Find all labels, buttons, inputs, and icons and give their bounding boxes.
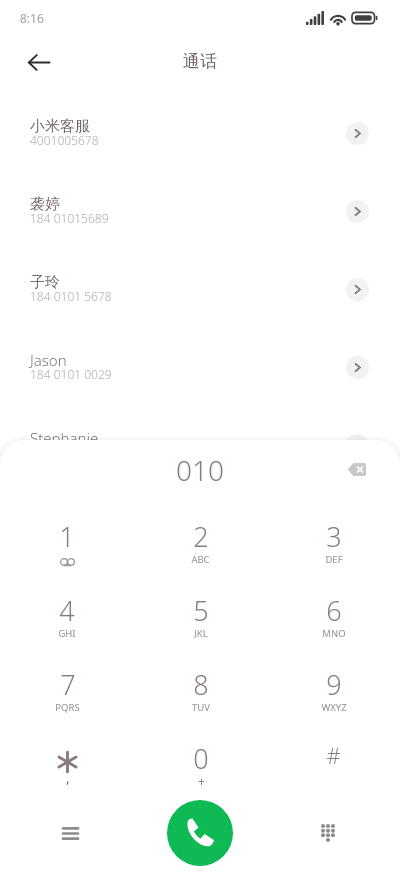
button[interactable]: 袭婷 [0, 175, 400, 253]
button[interactable]: # [267, 734, 400, 808]
button[interactable]: Jason [0, 331, 400, 409]
button[interactable]: 6 [267, 586, 400, 660]
button[interactable]: Dialpad [305, 810, 350, 855]
button[interactable]: 0 [134, 734, 267, 808]
staticText: 184 01015689 [30, 210, 109, 226]
staticText: 5 [193, 592, 209, 629]
staticText: 8:16 [20, 10, 44, 26]
staticText: 0 [193, 740, 209, 777]
staticText: Stephanie [30, 428, 99, 448]
staticText: 184 0101 5678 [30, 288, 112, 304]
staticText: MNO [322, 627, 346, 640]
staticText: + [198, 773, 205, 789]
staticText: 3 [326, 518, 342, 555]
staticText: 4001005678 [30, 132, 99, 148]
staticText: GHI [58, 627, 76, 640]
staticText: ABC [191, 553, 210, 566]
button[interactable]: Call [167, 800, 233, 866]
staticText: , [66, 768, 70, 787]
staticText: 子玲 [30, 273, 60, 292]
staticText: WXYZ [321, 701, 347, 714]
staticText: Jason [30, 350, 67, 370]
button[interactable]: Call log options [48, 811, 93, 856]
staticText: 6 [326, 592, 342, 629]
button[interactable]: 小米客服 [0, 97, 400, 175]
staticText: 小米客服 [30, 117, 90, 136]
staticText: 1 [59, 518, 75, 555]
staticText: PQRS [55, 701, 80, 714]
staticText: JKL [194, 627, 208, 640]
button[interactable]: , [0, 734, 134, 808]
button[interactable]: 3 [267, 512, 400, 586]
button[interactable]: Back [14, 38, 62, 86]
button[interactable]: 子玲 [0, 253, 400, 331]
staticText: # [326, 740, 341, 770]
button[interactable]: 9 [267, 660, 400, 734]
button[interactable]: 7 [0, 660, 134, 734]
staticText: DEF [325, 553, 343, 566]
staticText: 袭婷 [30, 195, 60, 214]
staticText: 010 [176, 451, 224, 489]
button[interactable]: 1 [0, 512, 134, 586]
button[interactable]: 2 [134, 512, 267, 586]
button[interactable]: 4 [0, 586, 134, 660]
button[interactable]: Backspace [335, 448, 378, 491]
button[interactable]: Stephanie [0, 409, 400, 487]
staticText: TUV [192, 701, 210, 714]
staticText: 8 [193, 666, 209, 703]
button[interactable]: 5 [134, 586, 267, 660]
staticText: 通话 [183, 51, 217, 72]
staticText: 9 [326, 666, 342, 703]
button[interactable]: 8 [134, 660, 267, 734]
staticText: 7 [60, 666, 76, 703]
staticText: 2 [193, 518, 209, 555]
staticText: 184 0101 0029 [30, 366, 112, 382]
staticText: 4 [59, 592, 75, 629]
